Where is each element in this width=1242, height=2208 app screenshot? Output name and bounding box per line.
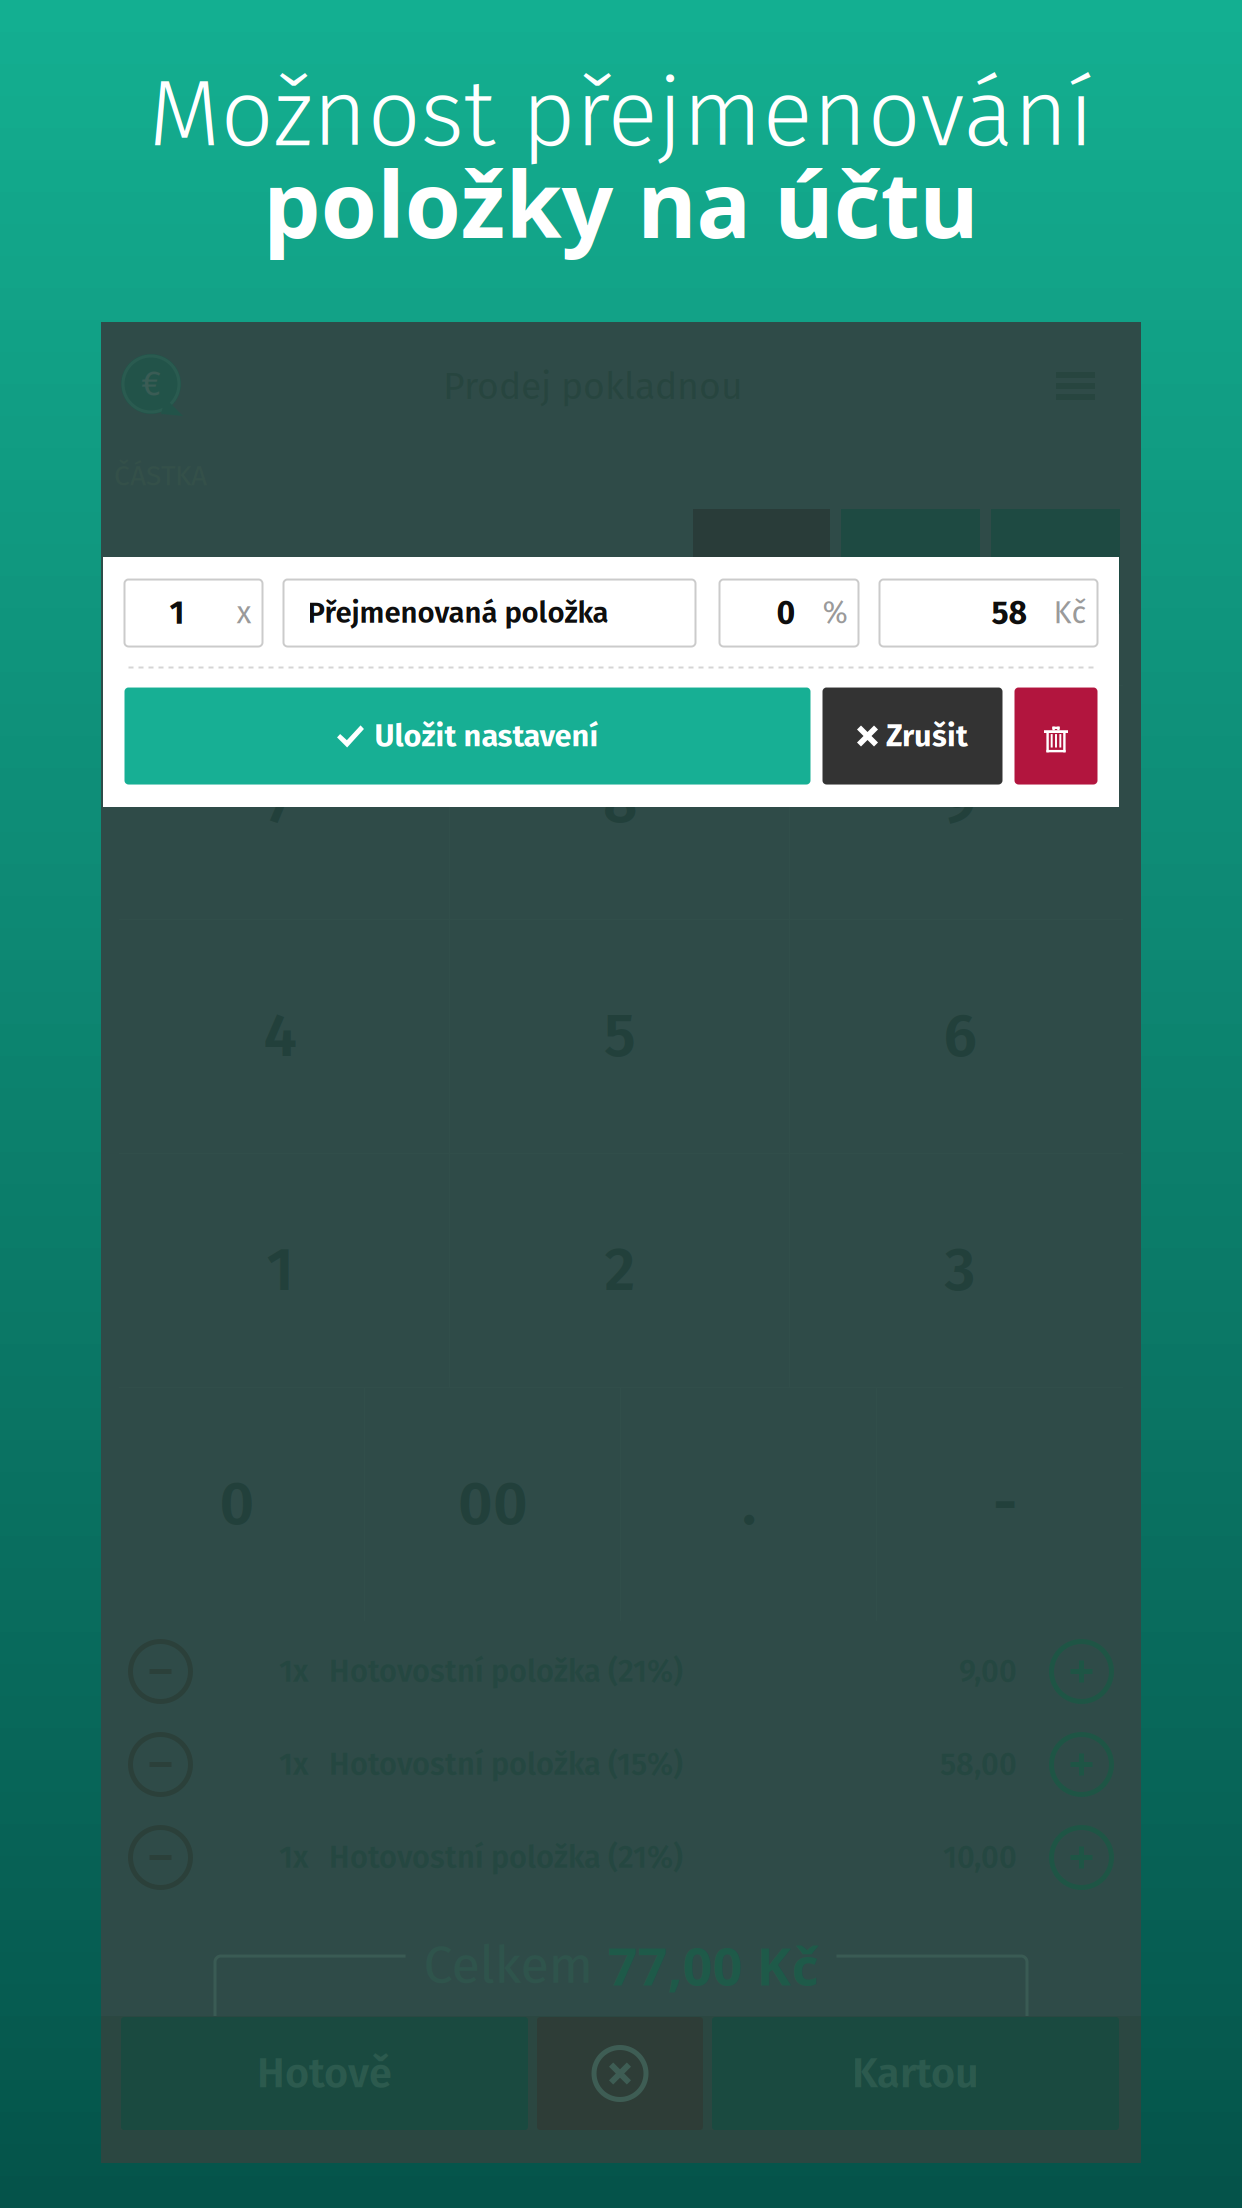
staticText: 3 (944, 1234, 975, 1306)
staticText: Kč (1053, 595, 1086, 631)
staticText: 1x (279, 1839, 308, 1876)
button[interactable]: Účet (121, 354, 187, 420)
staticText: 1x (279, 1746, 308, 1783)
staticText: 77,00 Kč (607, 1930, 818, 2001)
button[interactable]: Smazat (693, 509, 830, 614)
staticText: 1 (169, 594, 184, 632)
staticText: 9,00 (959, 1653, 1017, 1690)
button[interactable]: Kartou (712, 2017, 1119, 2130)
staticText: Přejmenovaná položka (307, 595, 608, 631)
button[interactable]: Přidat (1049, 1625, 1114, 1718)
button[interactable]: Hotově (121, 2017, 528, 2130)
staticText: . (742, 1468, 756, 1540)
button[interactable]: 7 (110, 685, 450, 919)
staticText: Celkem (423, 1934, 607, 1997)
staticText: Prodej pokladnou (443, 364, 743, 409)
staticText: 8 (603, 766, 637, 838)
button[interactable]: Zrušit účtenku (537, 2017, 703, 2130)
staticText: 7 (266, 766, 294, 838)
staticText: Hotovostní položka (21%) (329, 1839, 683, 1876)
button[interactable]: Odebrat (128, 1718, 193, 1811)
button[interactable]: Sleva (841, 509, 980, 614)
staticText: 6 (943, 1000, 976, 1072)
staticText: 58 (991, 594, 1027, 632)
button[interactable]: Menu (1056, 372, 1095, 400)
staticText: € (141, 363, 161, 405)
button[interactable]: Odebrat (128, 1625, 193, 1718)
staticText: 1x (279, 1653, 308, 1690)
button[interactable]: Přidat (1049, 1718, 1114, 1811)
button[interactable]: Přidat (1049, 1811, 1114, 1904)
staticText: Hotovostní položka (21%) (329, 1653, 683, 1690)
staticText: x (236, 595, 251, 631)
staticText: Uložit nastavení (374, 718, 598, 754)
staticText: 4 (263, 1000, 296, 1072)
button[interactable]: 9 (790, 685, 1130, 919)
staticText: Zrušit (886, 718, 968, 754)
staticText: Možnost přejmenování (148, 58, 1093, 170)
button[interactable]: Zrušit (822, 687, 1002, 784)
button[interactable]: 8 (450, 685, 790, 919)
button[interactable]: Uložit nastavení (124, 687, 810, 784)
staticText: Kartou (852, 2049, 979, 2098)
button[interactable]: Odebrat (128, 1811, 193, 1904)
staticText: Hotově (257, 2049, 392, 2098)
staticText: 0 (776, 594, 795, 632)
button[interactable]: Smazat položku (1014, 687, 1097, 784)
staticText: 9 (943, 766, 976, 838)
staticText: 2 (604, 1234, 635, 1306)
staticText: 10,00 (943, 1839, 1017, 1876)
staticText: položky na účtu (263, 141, 978, 264)
button[interactable]: Přidat (991, 509, 1120, 614)
staticText: % (822, 595, 847, 631)
staticText: 5 (604, 1000, 636, 1072)
staticText: 0 (219, 1468, 254, 1540)
staticText: 00 (458, 1468, 528, 1540)
staticText: 1 (266, 1234, 293, 1306)
staticText: 58,00 (940, 1746, 1017, 1783)
staticText: - (993, 1468, 1017, 1540)
staticText: Hotovostní položka (15%) (329, 1746, 683, 1783)
